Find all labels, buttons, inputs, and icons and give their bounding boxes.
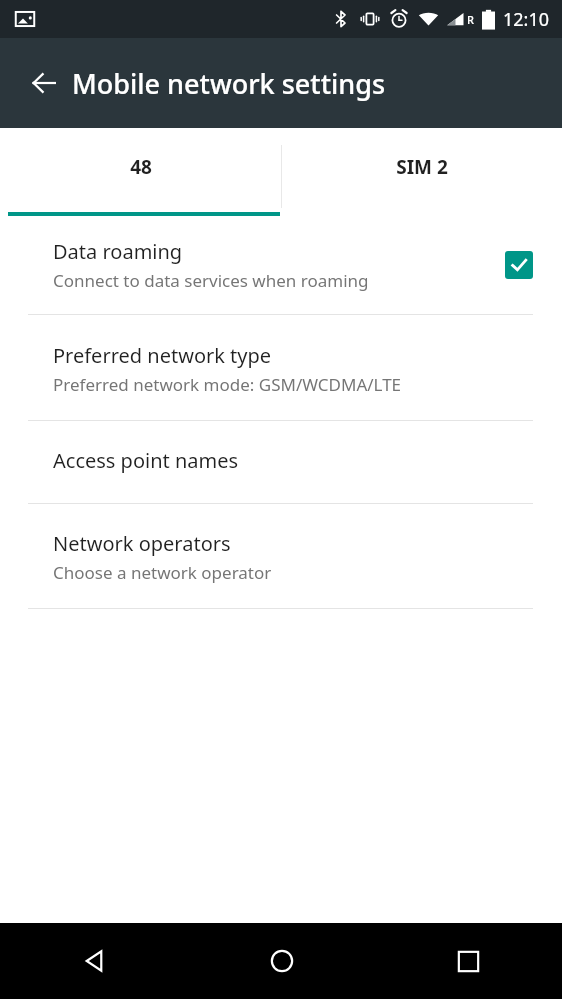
button[interactable]: Back: [0, 923, 188, 999]
staticText: Preferred network type: [53, 342, 272, 369]
button[interactable]: Preferred network type: [0, 315, 562, 420]
button[interactable]: Data roaming enabled: [505, 251, 533, 279]
button[interactable]: 48: [0, 128, 281, 218]
button[interactable]: Access point names: [0, 421, 562, 503]
staticText: Choose a network operator: [53, 561, 272, 584]
button[interactable]: Data roaming: [0, 218, 562, 314]
staticText: 12:10: [503, 7, 550, 32]
button[interactable]: Network operators: [0, 504, 562, 608]
staticText: SIM 2: [396, 154, 448, 180]
staticText: Preferred network mode: GSM/WCDMA/LTE: [53, 373, 402, 396]
button[interactable]: Recent apps: [375, 923, 562, 999]
staticText: Data roaming: [53, 238, 183, 265]
staticText: Mobile network settings: [72, 65, 386, 102]
staticText: R: [467, 12, 474, 27]
button[interactable]: Back: [20, 59, 68, 107]
staticText: Network operators: [53, 530, 231, 557]
button[interactable]: SIM 2: [281, 128, 562, 218]
staticText: Connect to data services when roaming: [53, 269, 369, 292]
button[interactable]: Home: [188, 923, 375, 999]
staticText: 48: [130, 154, 152, 180]
staticText: Access point names: [53, 447, 239, 474]
